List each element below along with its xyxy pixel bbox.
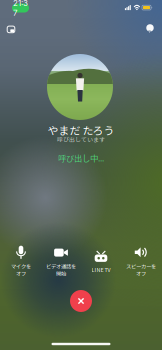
button[interactable]: Picture in picture [0, 19, 22, 40]
staticText: スピーカーを [126, 262, 156, 270]
staticText: 21:37 [13, 0, 28, 18]
staticText: オフ [136, 269, 146, 277]
staticText: 呼び出しています [57, 135, 105, 144]
staticText: LINE TV [91, 266, 110, 274]
staticText: マイクを [11, 262, 31, 270]
button[interactable]: LINE TV [81, 242, 121, 280]
button[interactable]: Mute microphone [1, 242, 41, 280]
button[interactable]: End call [65, 285, 97, 317]
button[interactable]: Start video call [41, 242, 81, 280]
staticText: やまだ たろう [47, 122, 114, 138]
staticText: 呼び出し中... [58, 152, 104, 164]
staticText: ビデオ通話を [46, 262, 76, 270]
button[interactable]: Chat [139, 17, 161, 40]
staticText: オフ [16, 269, 26, 277]
staticText: 開始 [56, 269, 66, 277]
button[interactable]: Speaker off [121, 242, 161, 280]
